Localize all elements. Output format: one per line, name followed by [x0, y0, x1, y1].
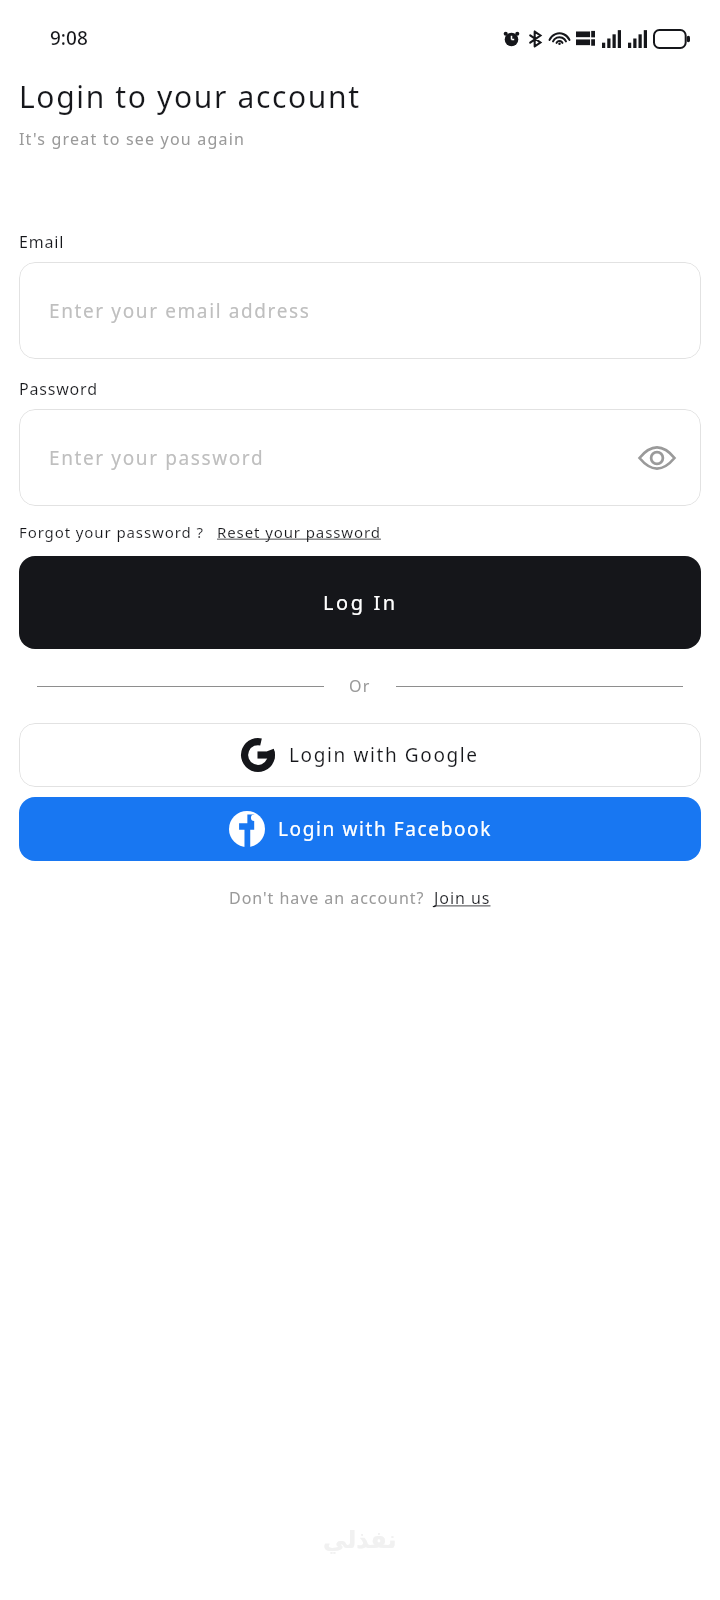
- staticText: Login with Facebook: [278, 816, 492, 842]
- staticText: Email: [19, 231, 65, 253]
- staticText: Log In: [323, 589, 398, 616]
- button[interactable]: Email field: [19, 262, 701, 359]
- button[interactable]: Join us: [434, 887, 491, 909]
- staticText: Enter your email address: [49, 298, 311, 324]
- staticText: Enter your password: [49, 445, 265, 471]
- button[interactable]: Login with Google: [19, 723, 701, 787]
- staticText: Reset your password: [217, 522, 381, 542]
- staticText: Password: [19, 378, 98, 400]
- staticText: نفذلي: [323, 1526, 397, 1554]
- staticText: Login with Google: [289, 742, 479, 768]
- button[interactable]: Login with Facebook: [19, 797, 701, 861]
- staticText: Forgot your password ?: [19, 522, 204, 542]
- staticText: It's great to see you again: [19, 128, 246, 150]
- staticText: Don't have an account?: [229, 887, 425, 909]
- button[interactable]: Show password: [633, 434, 681, 482]
- button[interactable]: Log In: [19, 556, 701, 649]
- staticText: Or: [349, 675, 371, 697]
- staticText: Login to your account: [19, 76, 361, 117]
- button[interactable]: Reset your password: [217, 522, 381, 542]
- staticText: 9:08: [50, 25, 88, 51]
- button[interactable]: Password field: [19, 409, 701, 506]
- staticText: Join us: [434, 887, 491, 909]
